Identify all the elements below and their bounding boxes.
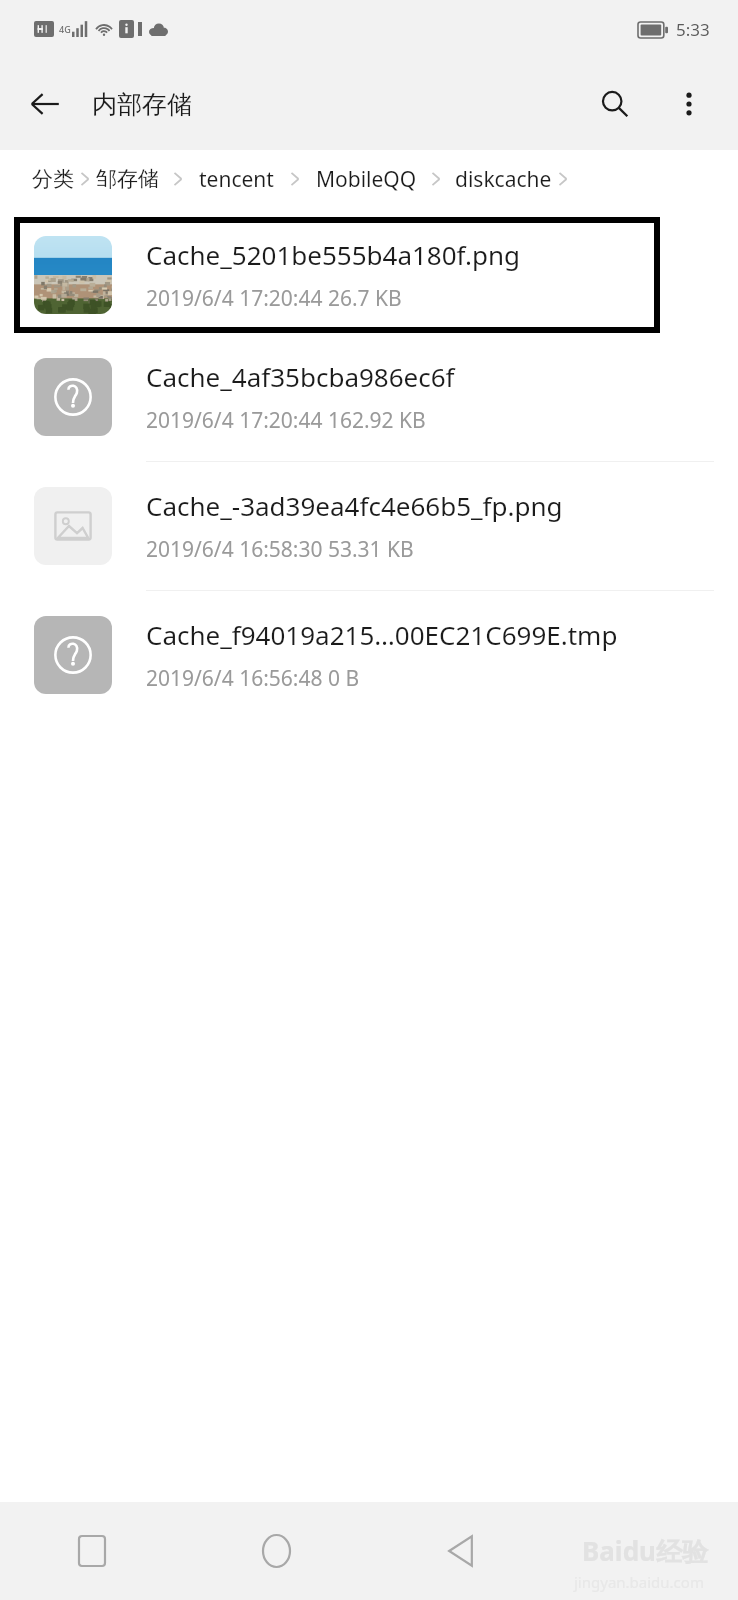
button[interactable]: Cache_5201be555b4a180f.png — [14, 217, 660, 333]
button[interactable]: Cache_f94019a215…00EC21C699E.tmp — [0, 591, 738, 719]
staticText: Cache_f94019a215…00EC21C699E.tmp — [146, 617, 618, 652]
button[interactable]: More options — [658, 73, 720, 135]
button[interactable]: Cache_4af35bcba986ec6f — [0, 333, 738, 461]
staticText: 内部存储 — [92, 89, 192, 120]
staticText: 4G — [59, 23, 71, 35]
button[interactable]: Search — [584, 73, 646, 135]
button[interactable]: MobileQQ — [316, 165, 417, 194]
button[interactable]: Recents — [0, 1502, 184, 1600]
button[interactable]: Cache_-3ad39ea4fc4e66b5_fp.png — [0, 462, 738, 590]
button[interactable]: Back — [368, 1502, 553, 1600]
button[interactable]: 邹存储 — [96, 166, 159, 192]
button[interactable]: 分类 — [32, 166, 74, 192]
staticText: 2019/6/4 16:56:48 0 B — [146, 664, 360, 693]
staticText: Cache_-3ad39ea4fc4e66b5_fp.png — [146, 488, 563, 523]
staticText: Cache_5201be555b4a180f.png — [146, 237, 521, 272]
staticText: Baidu经验 — [582, 1533, 708, 1569]
button[interactable]: Back — [14, 73, 76, 135]
staticText: 2019/6/4 17:20:44 26.7 KB — [146, 284, 402, 313]
staticText: 2019/6/4 16:58:30 53.31 KB — [146, 535, 414, 564]
button[interactable]: diskcache — [455, 165, 552, 194]
button[interactable]: Home — [184, 1502, 368, 1600]
button[interactable]: tencent — [199, 165, 274, 194]
staticText: 5:33 — [676, 18, 710, 41]
staticText: jingyan.baidu.com — [574, 1572, 704, 1592]
staticText: 2019/6/4 17:20:44 162.92 KB — [146, 406, 426, 435]
staticText: Cache_4af35bcba986ec6f — [146, 359, 455, 394]
